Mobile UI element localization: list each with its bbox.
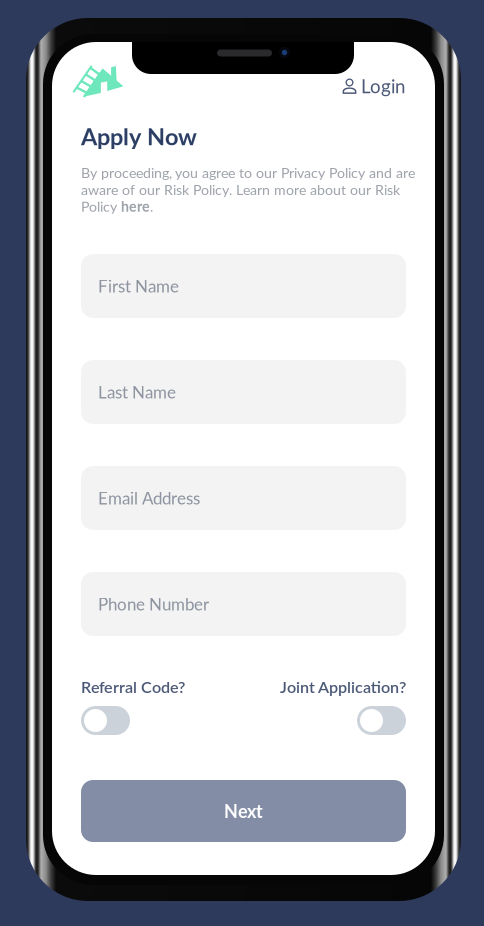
staticText: Apply Now	[81, 122, 197, 150]
staticText: By proceeding, you agree to our Privacy …	[81, 164, 415, 215]
staticText: Joint Application?	[280, 677, 406, 696]
button[interactable]: Login	[342, 76, 405, 96]
button[interactable]: First Name	[81, 254, 406, 318]
staticText: Login	[361, 75, 405, 97]
staticText: Phone Number	[98, 594, 209, 614]
staticText: Last Name	[98, 382, 176, 402]
button[interactable]: Next	[81, 780, 406, 842]
button[interactable]: Toggle	[357, 706, 406, 735]
staticText: First Name	[98, 276, 179, 296]
button[interactable]: Email Address	[81, 466, 406, 530]
staticText: Email Address	[98, 488, 200, 508]
button[interactable]: Last Name	[81, 360, 406, 424]
button[interactable]: Toggle	[81, 706, 130, 735]
staticText: Referral Code?	[81, 677, 185, 696]
staticText: Next	[224, 800, 263, 822]
button[interactable]: Phone Number	[81, 572, 406, 636]
